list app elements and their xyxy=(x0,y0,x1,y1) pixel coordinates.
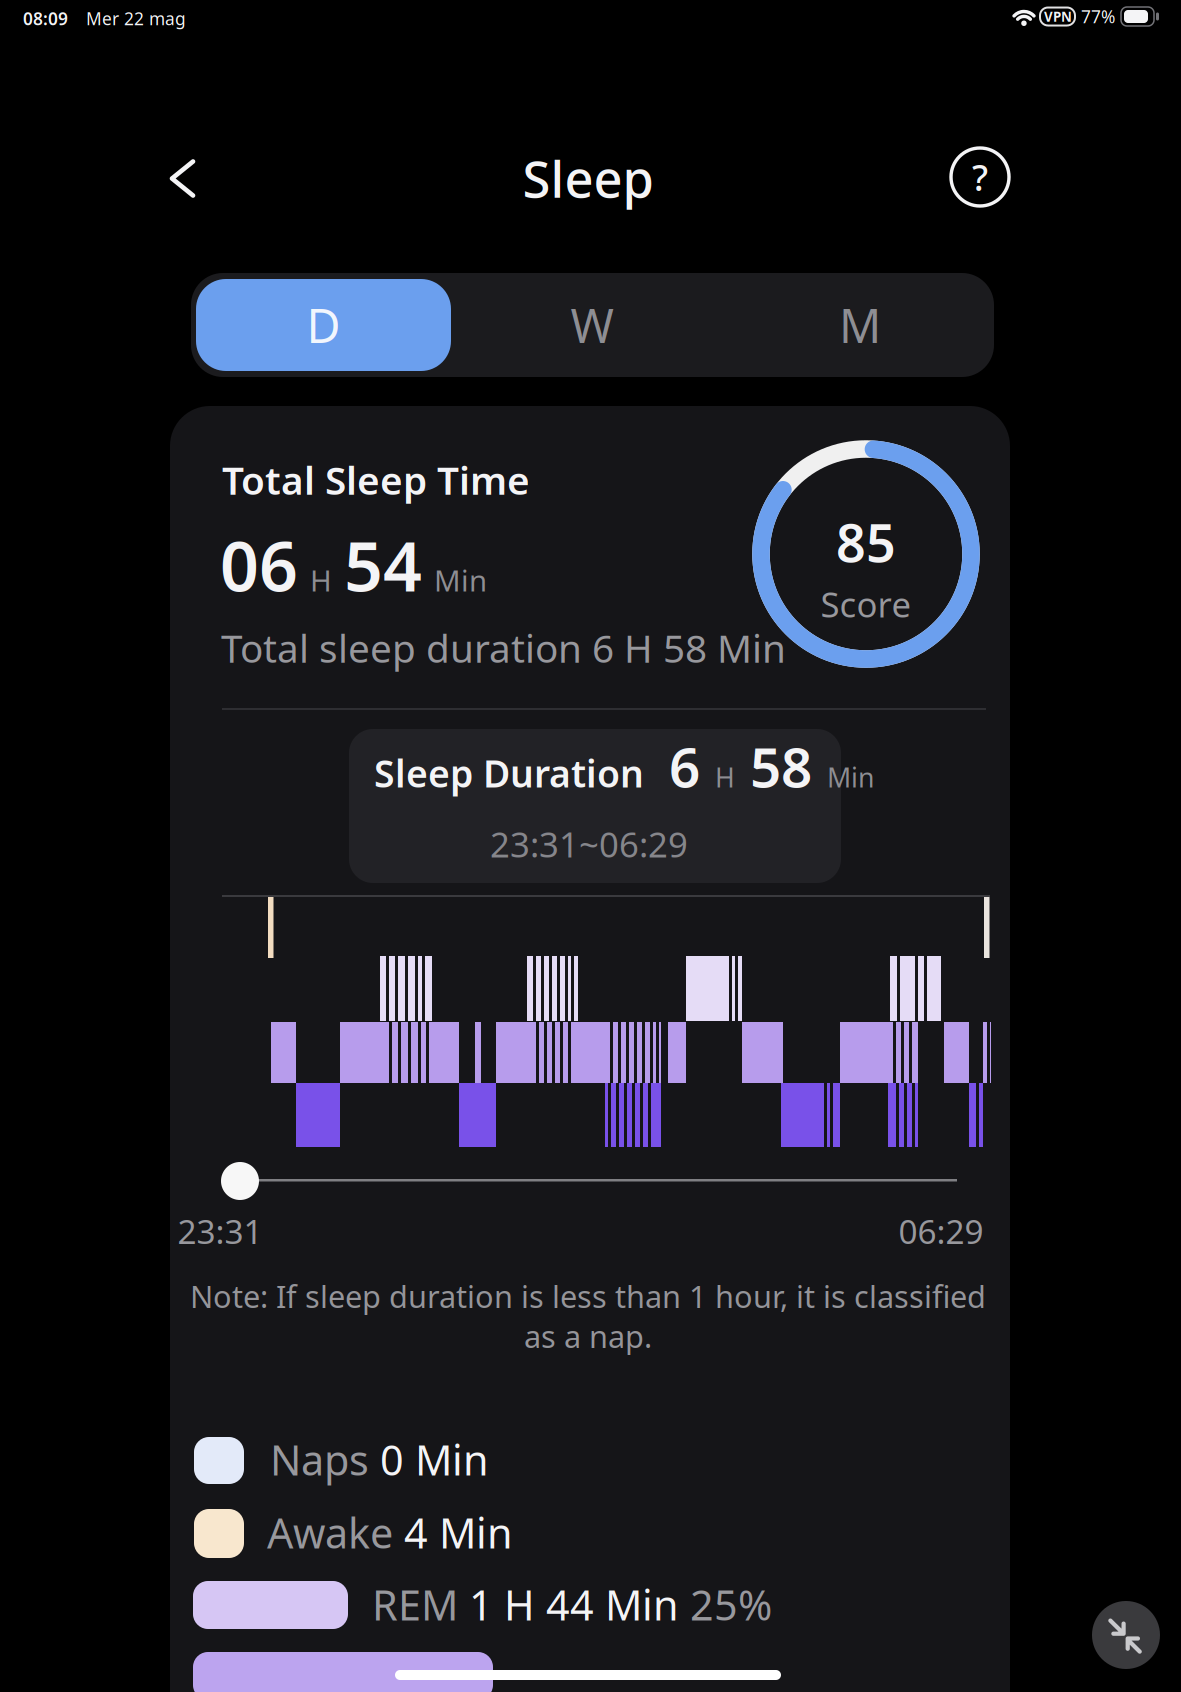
staticText: 85 xyxy=(836,507,896,577)
staticText: D xyxy=(306,294,340,356)
staticText: Mer 22 mag xyxy=(86,7,186,30)
staticText: Total Sleep Time xyxy=(222,454,530,505)
staticText: M xyxy=(839,294,881,356)
staticText: Score xyxy=(820,581,911,627)
button[interactable]: W xyxy=(458,273,726,377)
staticText: 08:09 xyxy=(23,7,68,30)
staticText: Awake xyxy=(267,1505,393,1560)
button[interactable] xyxy=(1092,1601,1160,1669)
staticText: 23:31 xyxy=(177,1209,262,1253)
staticText: ? xyxy=(972,153,988,201)
staticText: W xyxy=(570,294,613,356)
staticText: 54 xyxy=(344,520,422,610)
staticText: H xyxy=(715,759,735,795)
staticText: 23:31~06:29 xyxy=(490,821,688,867)
staticText: VPN xyxy=(1044,8,1072,25)
staticText: Note: If sleep duration is less than 1 h… xyxy=(190,1276,986,1316)
staticText: REM xyxy=(372,1577,458,1632)
staticText: Total sleep duration 6 H 58 Min xyxy=(221,622,786,673)
staticText: Sleep xyxy=(522,144,653,212)
staticText: 4 Min xyxy=(393,1505,513,1560)
button[interactable]: D xyxy=(196,279,451,371)
staticText: Min xyxy=(827,759,874,795)
staticText: 06:29 xyxy=(898,1209,983,1253)
staticText: 25% xyxy=(679,1577,772,1632)
staticText: as a nap. xyxy=(524,1316,652,1356)
staticText: 0 Min xyxy=(369,1432,489,1487)
staticText: H xyxy=(310,561,332,600)
staticText: Min xyxy=(434,561,487,600)
staticText: 1 H 44 Min xyxy=(458,1577,679,1632)
staticText: 6 xyxy=(669,730,700,803)
button[interactable]: ? xyxy=(951,148,1009,206)
button[interactable]: M xyxy=(726,273,994,377)
staticText: Naps xyxy=(270,1432,369,1487)
staticText: 06 xyxy=(220,520,298,610)
staticText: Sleep Duration xyxy=(374,748,654,798)
button[interactable] xyxy=(169,159,196,198)
staticText: 77% xyxy=(1081,5,1115,28)
staticText: 58 xyxy=(750,730,812,803)
